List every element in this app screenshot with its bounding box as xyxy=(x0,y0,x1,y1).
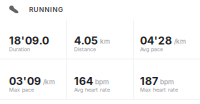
staticText: Avg heart rate xyxy=(74,86,110,93)
button[interactable]: 4.05 xyxy=(67,19,133,58)
staticText: 187 xyxy=(140,74,158,87)
staticText: Max pace xyxy=(9,86,34,93)
staticText: 03'09 xyxy=(9,74,41,87)
staticText: 4.05 xyxy=(74,34,98,47)
staticText: 164 xyxy=(74,74,93,87)
button[interactable]: 164 xyxy=(67,59,133,99)
staticText: Avg pace xyxy=(140,46,163,52)
staticText: km xyxy=(98,37,110,45)
staticText: Duration xyxy=(9,46,30,52)
staticText: Distance xyxy=(74,46,96,52)
button[interactable]: RUNNING xyxy=(0,0,200,19)
staticText: RUNNING xyxy=(29,5,63,14)
button[interactable]: 04'28 xyxy=(134,19,200,58)
button[interactable]: 187 xyxy=(134,59,200,99)
button[interactable]: 03'09 xyxy=(0,59,66,99)
button[interactable]: 18'09.0 xyxy=(0,19,66,58)
staticText: bpm xyxy=(93,78,109,86)
staticText: /km xyxy=(172,37,186,45)
staticText: 18'09.0 xyxy=(9,34,49,47)
staticText: 04'28 xyxy=(140,34,172,47)
staticText: /km xyxy=(41,78,55,86)
staticText: bpm xyxy=(158,78,174,86)
staticText: Max heart rate xyxy=(140,86,178,93)
